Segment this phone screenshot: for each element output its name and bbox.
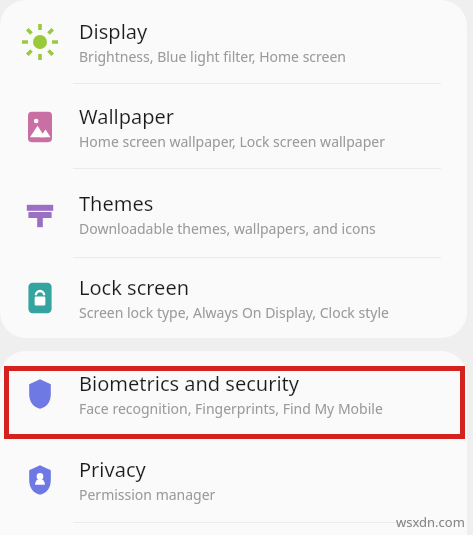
staticText: Display [79,18,148,45]
staticText: Biometrics and security [79,370,299,397]
button[interactable]: Biometrics and security [0,351,467,437]
staticText: Brightness, Blue light filter, Home scre… [79,47,347,66]
staticText: wsxdn.com [396,513,465,531]
staticText: Lock screen [79,274,190,301]
staticText: Privacy [79,456,146,483]
staticText: Home screen wallpaper, Lock screen wallp… [79,132,385,151]
button[interactable]: Privacy [0,437,467,523]
staticText: Themes [79,190,154,217]
staticText: Face recognition, Fingerprints, Find My … [79,399,383,418]
button[interactable]: Themes [0,169,467,258]
button[interactable]: Display [0,0,467,84]
button[interactable]: Wallpaper [0,84,467,169]
button[interactable]: Lock screen [0,258,467,338]
staticText: Downloadable themes, wallpapers, and ico… [79,219,376,238]
staticText: Screen lock type, Always On Display, Clo… [79,303,389,322]
staticText: Wallpaper [79,103,175,130]
staticText: Permission manager [79,485,216,504]
